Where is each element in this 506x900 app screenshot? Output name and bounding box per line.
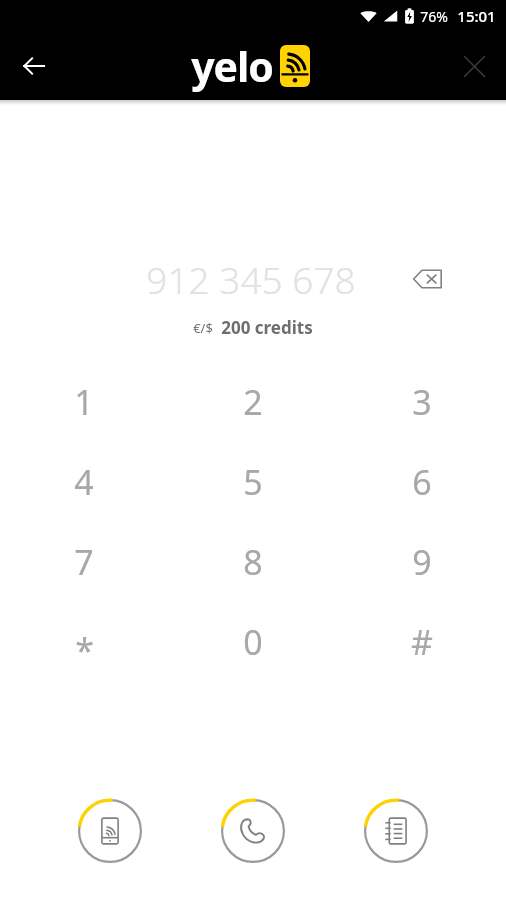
staticText: 9: [412, 539, 432, 585]
staticText: 3: [412, 379, 432, 425]
button[interactable]: 1: [0, 362, 168, 442]
staticText: #: [411, 619, 433, 665]
staticText: €/$: [193, 319, 213, 337]
button[interactable]: *: [0, 602, 168, 682]
button[interactable]: Close: [450, 42, 498, 90]
button[interactable]: 912 345 678: [146, 254, 356, 304]
staticText: 5: [243, 459, 263, 505]
staticText: 4: [74, 459, 94, 505]
staticText: 8: [243, 539, 263, 585]
button[interactable]: yelo: [191, 38, 310, 94]
button[interactable]: 8: [168, 522, 337, 602]
button[interactable]: 6: [337, 442, 506, 522]
staticText: 912 345 678: [146, 254, 356, 304]
staticText: 2: [243, 379, 263, 425]
staticText: *: [75, 627, 94, 673]
staticText: yelo: [191, 38, 273, 94]
button[interactable]: 9: [337, 522, 506, 602]
staticText: 76%: [420, 7, 448, 26]
button[interactable]: Top up: [78, 799, 142, 863]
button[interactable]: #: [337, 602, 506, 682]
staticText: 1: [74, 379, 94, 425]
staticText: 0: [243, 619, 263, 665]
button[interactable]: 5: [168, 442, 337, 522]
staticText: 6: [412, 459, 432, 505]
button[interactable]: Back: [8, 40, 60, 92]
button[interactable]: Contacts: [364, 799, 428, 863]
button[interactable]: 4: [0, 442, 168, 522]
button[interactable]: Call: [221, 799, 285, 863]
staticText: 200 credits: [221, 316, 313, 339]
button[interactable]: Backspace: [406, 257, 450, 301]
button[interactable]: 0: [168, 602, 337, 682]
staticText: 15:01: [457, 6, 496, 26]
staticText: 7: [74, 539, 94, 585]
button[interactable]: 3: [337, 362, 506, 442]
button[interactable]: 2: [168, 362, 337, 442]
button[interactable]: 7: [0, 522, 168, 602]
